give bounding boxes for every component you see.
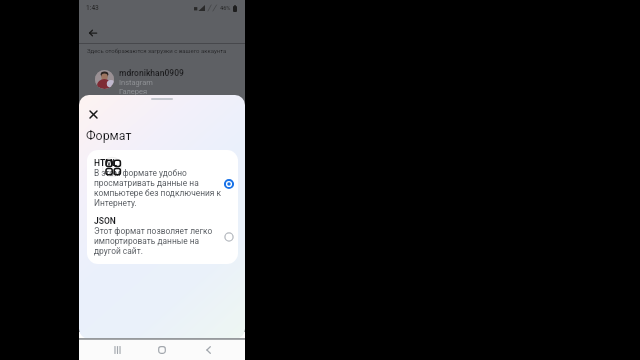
staticText: В этом формате удобно просматривать данн… [94, 168, 222, 208]
button[interactable]: JSON [87, 212, 238, 260]
button[interactable]: Home [154, 342, 170, 358]
staticText: Этот формат позволяет легко импортироват… [94, 226, 222, 256]
button[interactable]: Назад [84, 24, 101, 41]
button[interactable]: Back [200, 342, 216, 358]
staticText: 1:43 [86, 4, 99, 12]
staticText: HTML [94, 158, 118, 168]
staticText: Галерея [119, 87, 148, 96]
button[interactable]: Recents [109, 342, 125, 358]
staticText: Instagram [119, 78, 153, 87]
staticText: 46% [220, 5, 231, 12]
staticText: JSON [94, 216, 116, 226]
staticText: Формат [86, 128, 132, 143]
button[interactable]: HTML [87, 154, 238, 212]
button[interactable]: Закрыть [84, 105, 102, 123]
staticText: Здесь отображаются загрузки с вашего акк… [87, 47, 253, 54]
staticText: mdronikhan0909 [119, 68, 184, 78]
